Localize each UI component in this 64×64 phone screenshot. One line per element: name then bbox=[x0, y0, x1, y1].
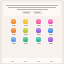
button[interactable]: Mail bbox=[48, 28, 53, 35]
button[interactable]: Secondary action bbox=[33, 11, 42, 14]
button[interactable]: Store bbox=[48, 37, 53, 44]
button[interactable]: Tab 2 bbox=[23, 59, 28, 63]
button[interactable]: Files bbox=[11, 28, 16, 35]
button[interactable]: Music bbox=[48, 19, 53, 26]
button[interactable]: Tab 1 bbox=[10, 59, 15, 63]
button[interactable]: Calendar bbox=[36, 28, 41, 35]
button[interactable]: Photos bbox=[36, 19, 41, 26]
button[interactable]: Tab 3 bbox=[36, 59, 41, 63]
button[interactable]: Weather bbox=[23, 19, 28, 26]
button[interactable]: Tab 4 bbox=[49, 59, 54, 63]
button[interactable]: Health bbox=[23, 28, 28, 35]
button[interactable]: Notes bbox=[11, 19, 16, 26]
button[interactable]: Primary action bbox=[22, 11, 31, 14]
button[interactable]: Camera bbox=[23, 37, 28, 44]
button[interactable]: Maps bbox=[11, 37, 16, 44]
button[interactable]: Primary action bbox=[4, 3, 60, 16]
button[interactable]: Clock bbox=[36, 37, 41, 44]
